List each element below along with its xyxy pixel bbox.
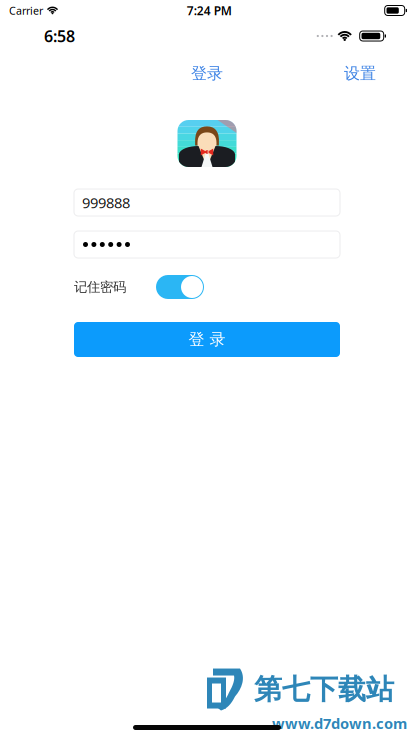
- staticText: 设置: [344, 64, 376, 83]
- staticText: 记住密码: [74, 279, 126, 295]
- staticText: 登 录: [188, 330, 225, 349]
- staticText: Carrier: [9, 3, 43, 18]
- button[interactable]: 设置: [344, 64, 414, 83]
- button[interactable]: 登 录: [74, 322, 340, 357]
- button[interactable]: 记住密码: [156, 275, 204, 299]
- staticText: 登录: [191, 64, 223, 83]
- staticText: 7:24 PM: [187, 2, 232, 18]
- button[interactable]: 登录: [191, 64, 223, 83]
- staticText: www.d7down.com: [272, 713, 407, 733]
- staticText: 第七下载站: [254, 672, 394, 707]
- staticText: 6:58: [44, 25, 75, 47]
- staticText: 999888: [82, 193, 130, 212]
